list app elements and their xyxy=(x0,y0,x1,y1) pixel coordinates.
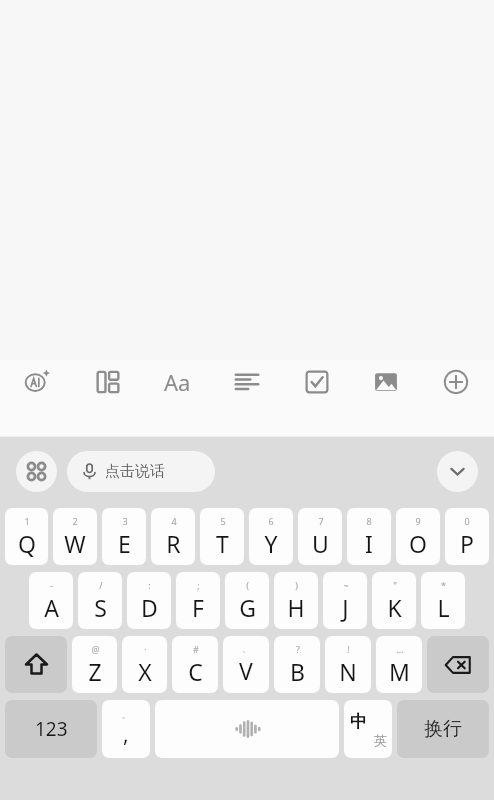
button[interactable]: 5 xyxy=(200,508,244,565)
button[interactable]: 换行 xyxy=(397,700,489,758)
button[interactable]: : xyxy=(127,572,171,629)
button[interactable]: 123 xyxy=(5,700,97,758)
button[interactable]: 8 xyxy=(347,508,391,565)
staticText: T xyxy=(216,528,229,559)
button[interactable]: 0 xyxy=(445,508,489,565)
staticText: E xyxy=(118,528,131,559)
button[interactable]: ; xyxy=(176,572,220,629)
button[interactable]: Align text xyxy=(225,360,269,404)
staticText: Z xyxy=(88,656,102,687)
staticText: F xyxy=(192,592,204,623)
button[interactable]: - xyxy=(29,572,73,629)
button[interactable]: / xyxy=(78,572,122,629)
button[interactable]: Keyboard menu xyxy=(16,451,57,492)
staticText: " xyxy=(393,579,397,591)
staticText: / xyxy=(99,579,103,591)
staticText: 8 xyxy=(366,515,372,527)
staticText: 英 xyxy=(374,732,387,748)
staticText: 9 xyxy=(415,515,421,527)
staticText: I xyxy=(365,528,373,559)
button[interactable]: AI assistant xyxy=(16,360,60,404)
button[interactable]: ~ xyxy=(323,572,367,629)
staticText: G xyxy=(239,592,256,623)
button[interactable]: Switch Chinese English xyxy=(344,700,392,758)
staticText: 5 xyxy=(220,515,226,527)
staticText: 0 xyxy=(464,515,470,527)
button[interactable]: ) xyxy=(274,572,318,629)
staticText: ... xyxy=(396,643,404,655)
staticText: ( xyxy=(246,579,249,591)
button[interactable]: Insert image xyxy=(364,360,408,404)
staticText: : xyxy=(148,579,151,591)
staticText: 3 xyxy=(122,515,128,527)
staticText: N xyxy=(339,656,357,687)
staticText: O xyxy=(409,528,427,559)
button[interactable]: 7 xyxy=(298,508,342,565)
staticText: Q xyxy=(18,528,36,559)
button[interactable]: 2 xyxy=(53,508,97,565)
staticText: ; xyxy=(197,579,200,591)
staticText: U xyxy=(312,528,329,559)
staticText: 4 xyxy=(171,515,177,527)
button[interactable]: Font size xyxy=(155,360,199,404)
staticText: , xyxy=(123,720,129,749)
staticText: ) xyxy=(295,579,298,591)
staticText: 6 xyxy=(268,515,274,527)
staticText: # xyxy=(193,643,199,655)
button[interactable]: 。 xyxy=(102,700,150,758)
button[interactable]: ! xyxy=(325,636,371,693)
staticText: 、 xyxy=(242,643,251,654)
staticText: Y xyxy=(264,528,278,559)
staticText: 点击说话 xyxy=(105,462,165,481)
staticText: B xyxy=(290,656,305,687)
button[interactable]: * xyxy=(421,572,465,629)
button[interactable]: ... xyxy=(376,636,422,693)
button[interactable]: Backspace xyxy=(427,636,489,693)
staticText: W xyxy=(64,528,86,559)
staticText: - xyxy=(50,579,53,591)
staticText: * xyxy=(441,579,446,591)
staticText: ? xyxy=(296,643,300,655)
staticText: P xyxy=(460,528,474,559)
button[interactable]: Layout xyxy=(86,360,130,404)
staticText: K xyxy=(387,592,402,623)
button[interactable]: 4 xyxy=(151,508,195,565)
staticText: S xyxy=(94,592,107,623)
staticText: M xyxy=(389,656,410,687)
staticText: J xyxy=(342,592,349,623)
staticText: V xyxy=(239,655,253,686)
staticText: C xyxy=(188,656,203,687)
staticText: ~ xyxy=(343,579,349,591)
staticText: 7 xyxy=(318,515,324,527)
button[interactable]: Space xyxy=(155,700,339,758)
button[interactable]: Hide keyboard xyxy=(437,451,478,492)
button[interactable]: 、 xyxy=(223,636,269,693)
button[interactable]: 1 xyxy=(5,508,48,565)
button[interactable]: 点击说话 xyxy=(67,451,215,492)
staticText: L xyxy=(437,592,450,623)
button[interactable]: ? xyxy=(274,636,320,693)
button[interactable]: 9 xyxy=(396,508,440,565)
staticText: H xyxy=(287,592,305,623)
staticText: 2 xyxy=(72,515,78,527)
button[interactable]: · xyxy=(122,636,167,693)
staticText: @ xyxy=(91,643,100,655)
button[interactable]: 6 xyxy=(249,508,293,565)
staticText: A xyxy=(44,592,59,623)
button[interactable]: ( xyxy=(225,572,269,629)
staticText: 123 xyxy=(35,716,68,742)
staticText: D xyxy=(141,592,158,623)
button[interactable]: # xyxy=(172,636,218,693)
button[interactable]: Shift xyxy=(5,636,67,693)
button[interactable]: " xyxy=(372,572,416,629)
staticText: · xyxy=(144,643,147,655)
button[interactable]: Checklist xyxy=(295,360,339,404)
staticText: 中 xyxy=(350,711,367,732)
staticText: X xyxy=(138,656,152,687)
staticText: R xyxy=(166,528,181,559)
staticText: 换行 xyxy=(424,717,462,741)
button[interactable]: @ xyxy=(72,636,117,693)
staticText: ! xyxy=(347,643,350,655)
button[interactable]: 3 xyxy=(102,508,146,565)
button[interactable]: More xyxy=(434,360,478,404)
